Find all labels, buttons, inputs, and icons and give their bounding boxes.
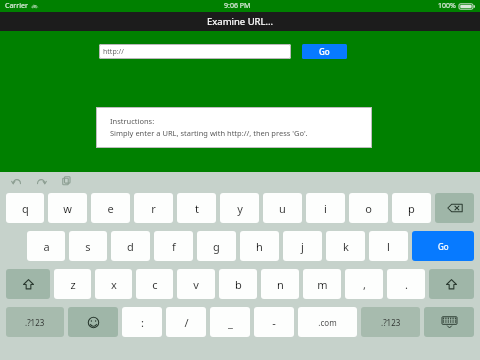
button[interactable]: .	[387, 269, 425, 299]
staticText: g	[213, 239, 220, 254]
staticText: u	[279, 201, 286, 216]
button[interactable]: z	[54, 269, 91, 299]
staticText: p	[408, 201, 415, 216]
button[interactable]: http://	[99, 44, 291, 59]
button[interactable]: -	[254, 307, 294, 337]
button[interactable]: .com	[298, 307, 357, 337]
button[interactable]: .?123	[6, 307, 64, 337]
button[interactable]: Go	[412, 231, 474, 261]
button[interactable]: b	[219, 269, 257, 299]
button[interactable]: t	[177, 193, 216, 223]
button[interactable]: o	[349, 193, 388, 223]
button[interactable]: Undo	[11, 175, 22, 186]
staticText: q	[22, 201, 29, 216]
staticText: s	[85, 239, 91, 254]
button[interactable]: j	[283, 231, 322, 261]
button[interactable]: f	[154, 231, 193, 261]
staticText: http://	[103, 47, 124, 57]
button[interactable]: k	[326, 231, 365, 261]
button[interactable]: r	[134, 193, 173, 223]
button[interactable]: Copy	[61, 175, 72, 186]
staticText: .com	[318, 317, 337, 328]
button[interactable]: Go	[302, 44, 347, 59]
staticText: e	[107, 201, 114, 216]
staticText: Simply enter a URL, starting with http:/…	[110, 128, 308, 138]
staticText: Go	[319, 46, 330, 57]
staticText: Go	[438, 241, 449, 252]
staticText: Carrier	[5, 1, 28, 11]
button[interactable]: Emoji	[68, 307, 118, 337]
staticText: l	[387, 239, 390, 254]
button[interactable]: u	[263, 193, 302, 223]
button[interactable]: q	[6, 193, 44, 223]
staticText: v	[193, 277, 199, 292]
button[interactable]: p	[392, 193, 431, 223]
staticText: 9:06 PM	[224, 1, 251, 11]
button[interactable]: i	[306, 193, 345, 223]
button[interactable]: m	[303, 269, 341, 299]
button[interactable]: h	[240, 231, 279, 261]
button[interactable]: _	[210, 307, 250, 337]
button[interactable]: l	[369, 231, 408, 261]
staticText: x	[111, 277, 117, 292]
button[interactable]: Hide keyboard	[424, 307, 474, 337]
staticText: b	[235, 277, 242, 292]
staticText: w	[63, 201, 72, 216]
button[interactable]: a	[27, 231, 65, 261]
staticText: y	[237, 201, 243, 216]
staticText: m	[317, 277, 328, 292]
button[interactable]: w	[48, 193, 87, 223]
button[interactable]: e	[91, 193, 130, 223]
staticText: h	[256, 239, 263, 254]
staticText: -	[272, 315, 276, 330]
staticText: _	[228, 315, 233, 330]
staticText: Examine URL...	[207, 15, 274, 28]
staticText: i	[324, 201, 327, 216]
button[interactable]: n	[261, 269, 299, 299]
button[interactable]: /	[166, 307, 206, 337]
button[interactable]: x	[95, 269, 132, 299]
staticText: t	[195, 201, 199, 216]
staticText: c	[152, 277, 158, 292]
staticText: a	[43, 239, 50, 254]
staticText: k	[343, 239, 349, 254]
button[interactable]: :	[122, 307, 162, 337]
staticText: n	[277, 277, 284, 292]
button[interactable]: v	[177, 269, 215, 299]
button[interactable]: c	[136, 269, 173, 299]
staticText: r	[151, 201, 156, 216]
button[interactable]: ,	[345, 269, 383, 299]
button[interactable]: d	[111, 231, 150, 261]
staticText: ,	[363, 277, 366, 292]
button[interactable]: .?123	[361, 307, 420, 337]
staticText: :	[141, 315, 144, 330]
staticText: 100%	[438, 1, 456, 11]
staticText: z	[70, 277, 76, 292]
staticText: f	[172, 239, 176, 254]
button[interactable]: s	[69, 231, 107, 261]
button[interactable]: Shift	[429, 269, 474, 299]
staticText: d	[127, 239, 134, 254]
button[interactable]: Backspace	[435, 193, 474, 223]
button[interactable]: y	[220, 193, 259, 223]
staticText: o	[365, 201, 372, 216]
button[interactable]: Redo	[36, 175, 47, 186]
staticText: .?123	[381, 317, 401, 328]
staticText: .?123	[25, 317, 45, 328]
staticText: j	[301, 239, 304, 254]
button[interactable]: Shift	[6, 269, 50, 299]
staticText: .	[405, 277, 408, 292]
staticText: /	[184, 315, 189, 330]
button[interactable]: g	[197, 231, 236, 261]
staticText: Instructions:	[110, 116, 155, 126]
